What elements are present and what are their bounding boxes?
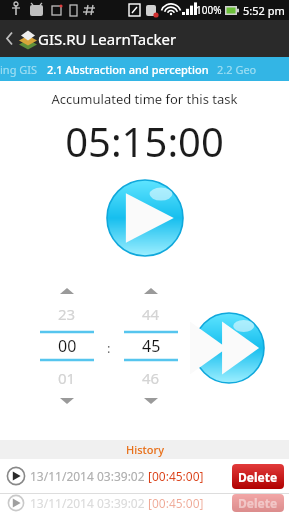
button[interactable]: Increment [120,282,182,300]
staticText: 2.2 Geo [217,62,257,77]
staticText: [00:45:00] [148,468,204,484]
staticText: [00:45:00] [148,495,204,511]
staticText: 05:15:00 [0,114,289,168]
staticText: Accumulated time for this task [0,90,289,108]
staticText: 00 [58,335,77,357]
button[interactable]: 2.1 Abstraction and perception [47,62,209,77]
button[interactable]: Decrement [36,392,98,410]
button[interactable]: Play entry [0,459,289,493]
staticText: 5:52 pm [243,3,285,18]
button[interactable]: ing GIS [0,62,38,77]
staticText: ing GIS [0,62,38,77]
staticText: : [107,339,111,357]
button[interactable]: Play entry [6,494,26,512]
staticText: History [126,442,164,457]
staticText: 13/11/2014 03:39:02 [30,495,148,511]
button[interactable]: 45 [120,333,182,359]
button[interactable]: Start timer [105,178,185,258]
button[interactable]: Delete [232,494,284,512]
button[interactable]: Navigate up [0,20,38,57]
button[interactable]: Play entry [0,494,289,512]
button[interactable]: Delete [232,464,284,489]
staticText: GIS.RU LearnTacker [38,29,177,49]
staticText: 23 [58,304,76,324]
staticText: 45 [142,335,161,357]
button[interactable]: 2.2 Geo [217,62,257,77]
staticText: Delete [238,495,278,511]
button[interactable]: Play entry [6,466,26,486]
staticText: 44 [142,304,160,324]
staticText: 13/11/2014 03:39:02 [30,468,148,484]
staticText: Delete [238,469,278,485]
staticText: 2.1 Abstraction and perception [47,62,209,77]
staticText: 46 [142,368,160,388]
staticText: 100% [196,3,222,17]
staticText: 01 [58,368,76,388]
button[interactable]: Increment [36,282,98,300]
button[interactable]: 00 [36,333,98,359]
button[interactable]: Decrement [120,392,182,410]
button[interactable]: Add time [192,311,266,385]
